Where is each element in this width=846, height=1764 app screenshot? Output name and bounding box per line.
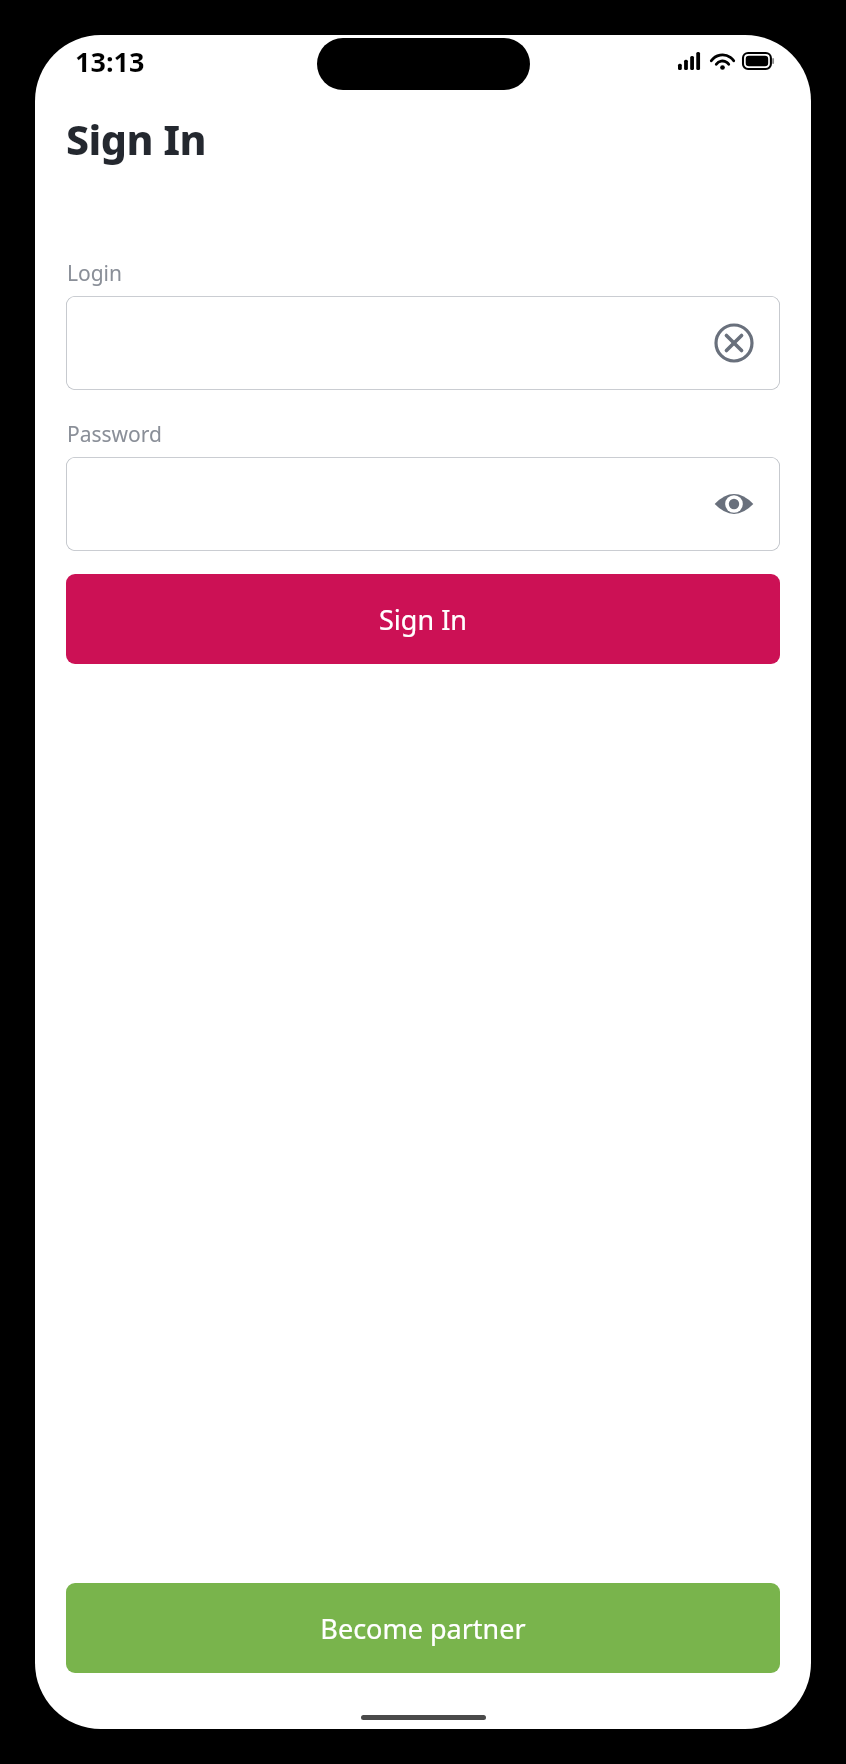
staticText: Login bbox=[67, 259, 123, 288]
button[interactable]: Become partner bbox=[66, 1583, 780, 1673]
staticText: Become partner bbox=[320, 1610, 526, 1647]
button[interactable]: Show password bbox=[706, 476, 762, 532]
staticText: 13:13 bbox=[75, 43, 145, 80]
staticText: Sign In bbox=[379, 601, 467, 638]
button[interactable]: Sign In bbox=[66, 574, 780, 664]
button[interactable]: Clear login bbox=[706, 315, 762, 371]
staticText: Password bbox=[67, 420, 162, 449]
button[interactable]: Show password bbox=[66, 457, 780, 551]
button[interactable]: Clear login bbox=[66, 296, 780, 390]
staticText: Sign In bbox=[66, 111, 207, 167]
